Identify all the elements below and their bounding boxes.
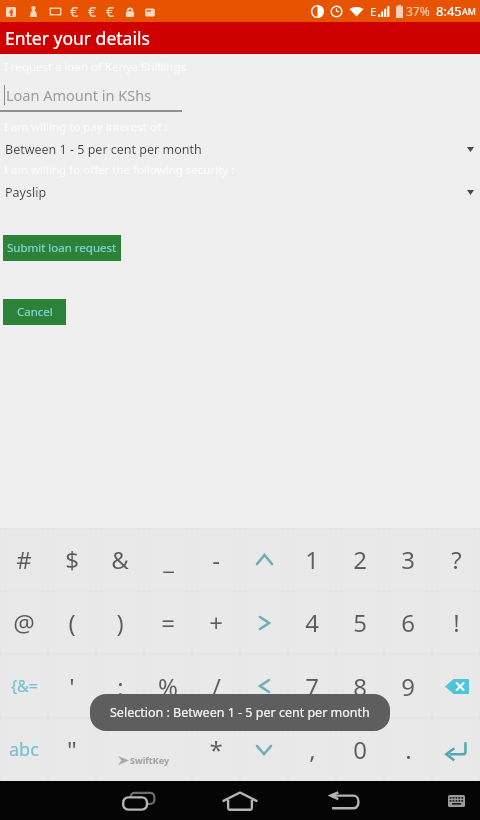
staticText: Enter your details [5, 26, 150, 50]
staticText: * [209, 733, 223, 766]
other: Previous [259, 679, 270, 693]
staticText: € [88, 2, 97, 21]
staticText: + [209, 606, 223, 639]
button[interactable]: = [145, 592, 191, 653]
staticText: {&= [11, 675, 38, 697]
staticText: 6 [401, 606, 415, 639]
staticText: = [161, 606, 175, 639]
staticText: I am willing to pay interest of : [4, 119, 167, 135]
button[interactable]: Payslip [0, 179, 480, 205]
staticText: Between 1 - 5 per cent per month [5, 141, 467, 158]
button[interactable]: Loan Amount in KShs [4, 84, 184, 106]
staticText: ; [117, 670, 124, 703]
staticText: ? [451, 543, 462, 576]
button[interactable]: ( [49, 592, 95, 653]
staticText: SwiftKey [130, 754, 170, 766]
button[interactable]: Shift up [241, 529, 287, 590]
button[interactable]: Switch keyboard [438, 783, 474, 819]
button[interactable]: 8 [337, 655, 383, 717]
staticText: 7 [305, 670, 319, 703]
staticText: @ [13, 606, 35, 639]
staticText: . [405, 733, 412, 766]
staticText: abc [9, 737, 39, 762]
staticText: # [16, 543, 32, 576]
button[interactable]: Enter [433, 719, 479, 780]
staticText: Cancel [17, 304, 53, 320]
staticText: Selection : Between 1 - 5 per cent per m… [110, 704, 370, 721]
staticText: AM [462, 5, 476, 17]
button[interactable]: @ [1, 592, 47, 653]
button[interactable]: Submit loan request [3, 235, 121, 261]
button[interactable]: Down [241, 719, 287, 780]
staticText: " [67, 733, 77, 766]
button[interactable]: ; [97, 655, 143, 717]
staticText: € [106, 2, 115, 21]
staticText: 2 [353, 543, 367, 576]
button[interactable]: 2 [337, 529, 383, 590]
button[interactable]: Recents [114, 781, 162, 820]
staticText: 0 [353, 733, 367, 766]
button[interactable]: , [289, 719, 335, 780]
button[interactable]: 0 [337, 719, 383, 780]
button[interactable]: Backspace [433, 655, 479, 717]
other: Down [256, 745, 272, 755]
button[interactable]: * [193, 719, 239, 780]
staticText: 37% [406, 3, 430, 19]
button[interactable]: . [385, 719, 431, 780]
staticText: 9 [401, 670, 415, 703]
staticText: Submit loan request [7, 240, 117, 256]
button[interactable]: Back [320, 781, 368, 820]
staticText: 3 [401, 543, 415, 576]
button[interactable]: abc [1, 719, 47, 780]
button[interactable]: 6 [385, 592, 431, 653]
button[interactable]: ' [49, 655, 95, 717]
button[interactable]: / [193, 655, 239, 717]
button[interactable]: $ [49, 529, 95, 590]
staticText: 8 [353, 670, 367, 703]
other: Backspace [445, 679, 469, 694]
button[interactable]: Next [241, 592, 287, 653]
button[interactable]: Enter your details [0, 22, 480, 54]
button[interactable]: _ [145, 529, 191, 590]
button[interactable]: % [145, 655, 191, 717]
other: Next [259, 616, 270, 630]
button[interactable]: SwiftKey [97, 719, 191, 780]
button[interactable]: ? [433, 529, 479, 590]
button[interactable]: & [97, 529, 143, 590]
staticText: I request a loan of Kenya Shillings [4, 59, 187, 75]
button[interactable]: + [193, 592, 239, 653]
staticText: E [370, 4, 377, 19]
staticText: € [70, 2, 79, 21]
staticText: ) [116, 606, 124, 639]
staticText: Payslip [5, 184, 467, 201]
staticText: 5 [353, 606, 367, 639]
button[interactable]: # [1, 529, 47, 590]
staticText: ( [68, 606, 76, 639]
staticText: I am willing to offer the following secu… [4, 162, 235, 178]
button[interactable]: ! [433, 592, 479, 653]
button[interactable]: Between 1 - 5 per cent per month [0, 136, 480, 162]
other: Enter [445, 741, 467, 761]
button[interactable]: 7 [289, 655, 335, 717]
staticText: , [309, 733, 316, 766]
button[interactable]: - [193, 529, 239, 590]
staticText: 4 [305, 606, 319, 639]
other: Shift up [256, 554, 273, 565]
button[interactable]: " [49, 719, 95, 780]
staticText: ! [453, 606, 460, 639]
button[interactable]: Cancel [3, 299, 66, 325]
button[interactable]: Home [216, 781, 264, 820]
button[interactable]: 1 [289, 529, 335, 590]
button[interactable]: 9 [385, 655, 431, 717]
button[interactable]: {&= [1, 655, 47, 717]
button[interactable]: 4 [289, 592, 335, 653]
staticText: _ [163, 543, 174, 576]
staticText: 1 [305, 543, 319, 576]
staticText: 8:45 [436, 2, 462, 20]
staticText: $ [65, 543, 79, 576]
button[interactable]: Previous [241, 655, 287, 717]
button[interactable]: 3 [385, 529, 431, 590]
staticText: Loan Amount in KShs [6, 85, 152, 105]
button[interactable]: ) [97, 592, 143, 653]
button[interactable]: 5 [337, 592, 383, 653]
